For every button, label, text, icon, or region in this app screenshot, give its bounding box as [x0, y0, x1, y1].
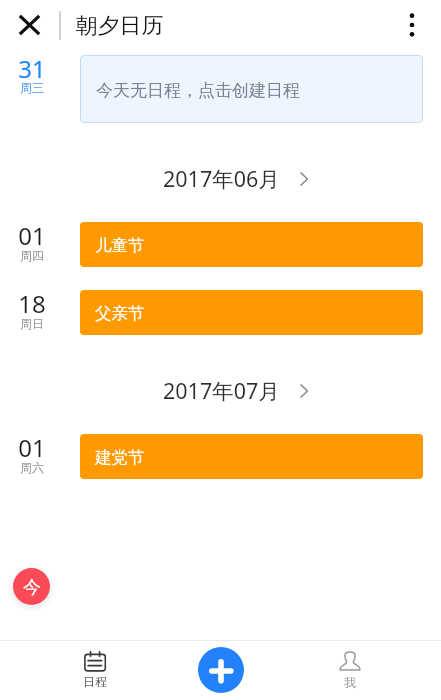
staticText: 今天无日程，点击创建日程	[96, 80, 300, 101]
staticText: 2017年07月	[163, 376, 280, 402]
button[interactable]: 建党节	[80, 434, 423, 479]
button[interactable]: 今天无日程，点击创建日程	[80, 55, 423, 123]
staticText: 儿童节	[95, 235, 145, 256]
staticText: 2017年06月	[163, 164, 280, 190]
staticText: 01	[18, 431, 46, 459]
button[interactable]: 回到今天	[13, 568, 50, 605]
staticText: 建党节	[95, 447, 145, 468]
button[interactable]: 2017年06月	[120, 164, 320, 190]
staticText: 18	[18, 287, 46, 315]
button[interactable]: 儿童节	[80, 222, 423, 267]
button[interactable]: 父亲节	[80, 290, 423, 335]
staticText: 我	[344, 675, 356, 690]
button[interactable]: 关闭	[13, 9, 45, 41]
staticText: 周四	[20, 248, 44, 263]
button[interactable]: 日程	[35, 641, 155, 700]
staticText: 日程	[83, 674, 107, 689]
staticText: 朝夕日历	[76, 12, 164, 39]
staticText: 周日	[20, 316, 44, 331]
staticText: 父亲节	[95, 303, 145, 324]
staticText: 31	[18, 52, 46, 80]
button[interactable]: 新建日程	[198, 647, 244, 693]
button[interactable]: 更多	[396, 9, 428, 41]
staticText: 周六	[20, 460, 44, 475]
staticText: 01	[18, 219, 46, 247]
staticText: 今	[23, 576, 41, 599]
staticText: 周三	[20, 80, 44, 95]
button[interactable]: 我	[290, 641, 410, 700]
button[interactable]: 2017年07月	[120, 376, 320, 402]
